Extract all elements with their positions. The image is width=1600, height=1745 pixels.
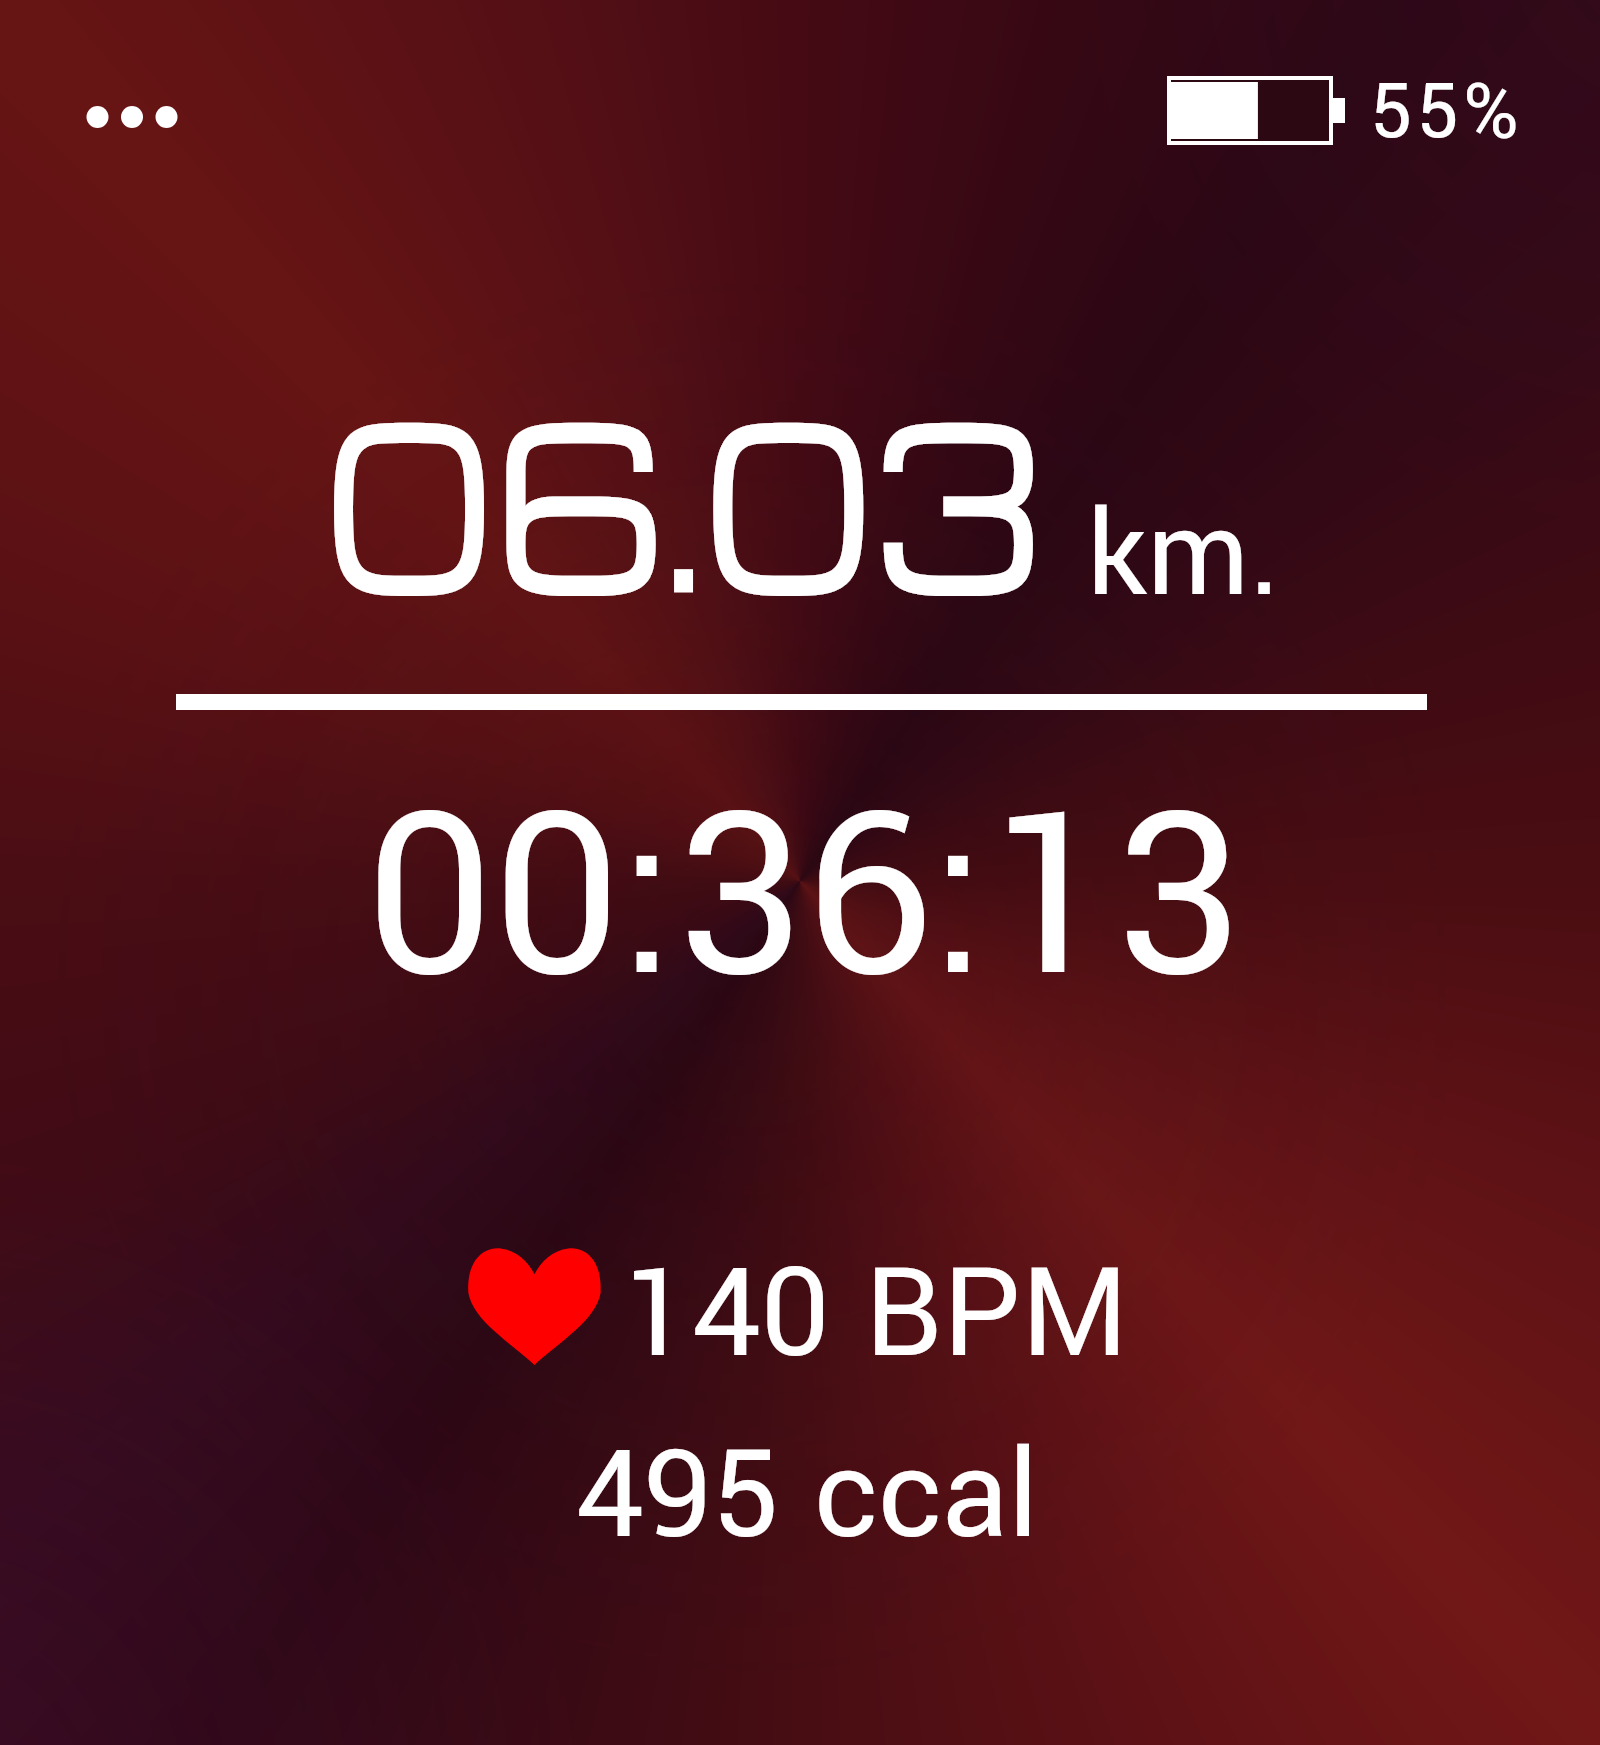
button[interactable]: 495 ccal bbox=[576, 1410, 1039, 1584]
staticText: 06.03 bbox=[324, 339, 1044, 649]
staticText: 06.03 bbox=[324, 339, 1044, 649]
staticText: 55% bbox=[1370, 58, 1523, 158]
staticText: 00:36:13 bbox=[366, 736, 1244, 1062]
button[interactable]: 140 BPM bbox=[460, 1225, 1116, 1385]
button[interactable]: Battery 55 percent bbox=[1160, 60, 1560, 160]
staticText: 140 BPM bbox=[623, 1227, 1129, 1387]
button[interactable]: More options bbox=[62, 80, 208, 154]
staticText: km. bbox=[1087, 472, 1281, 641]
staticText: 495 ccal bbox=[576, 1410, 1039, 1584]
